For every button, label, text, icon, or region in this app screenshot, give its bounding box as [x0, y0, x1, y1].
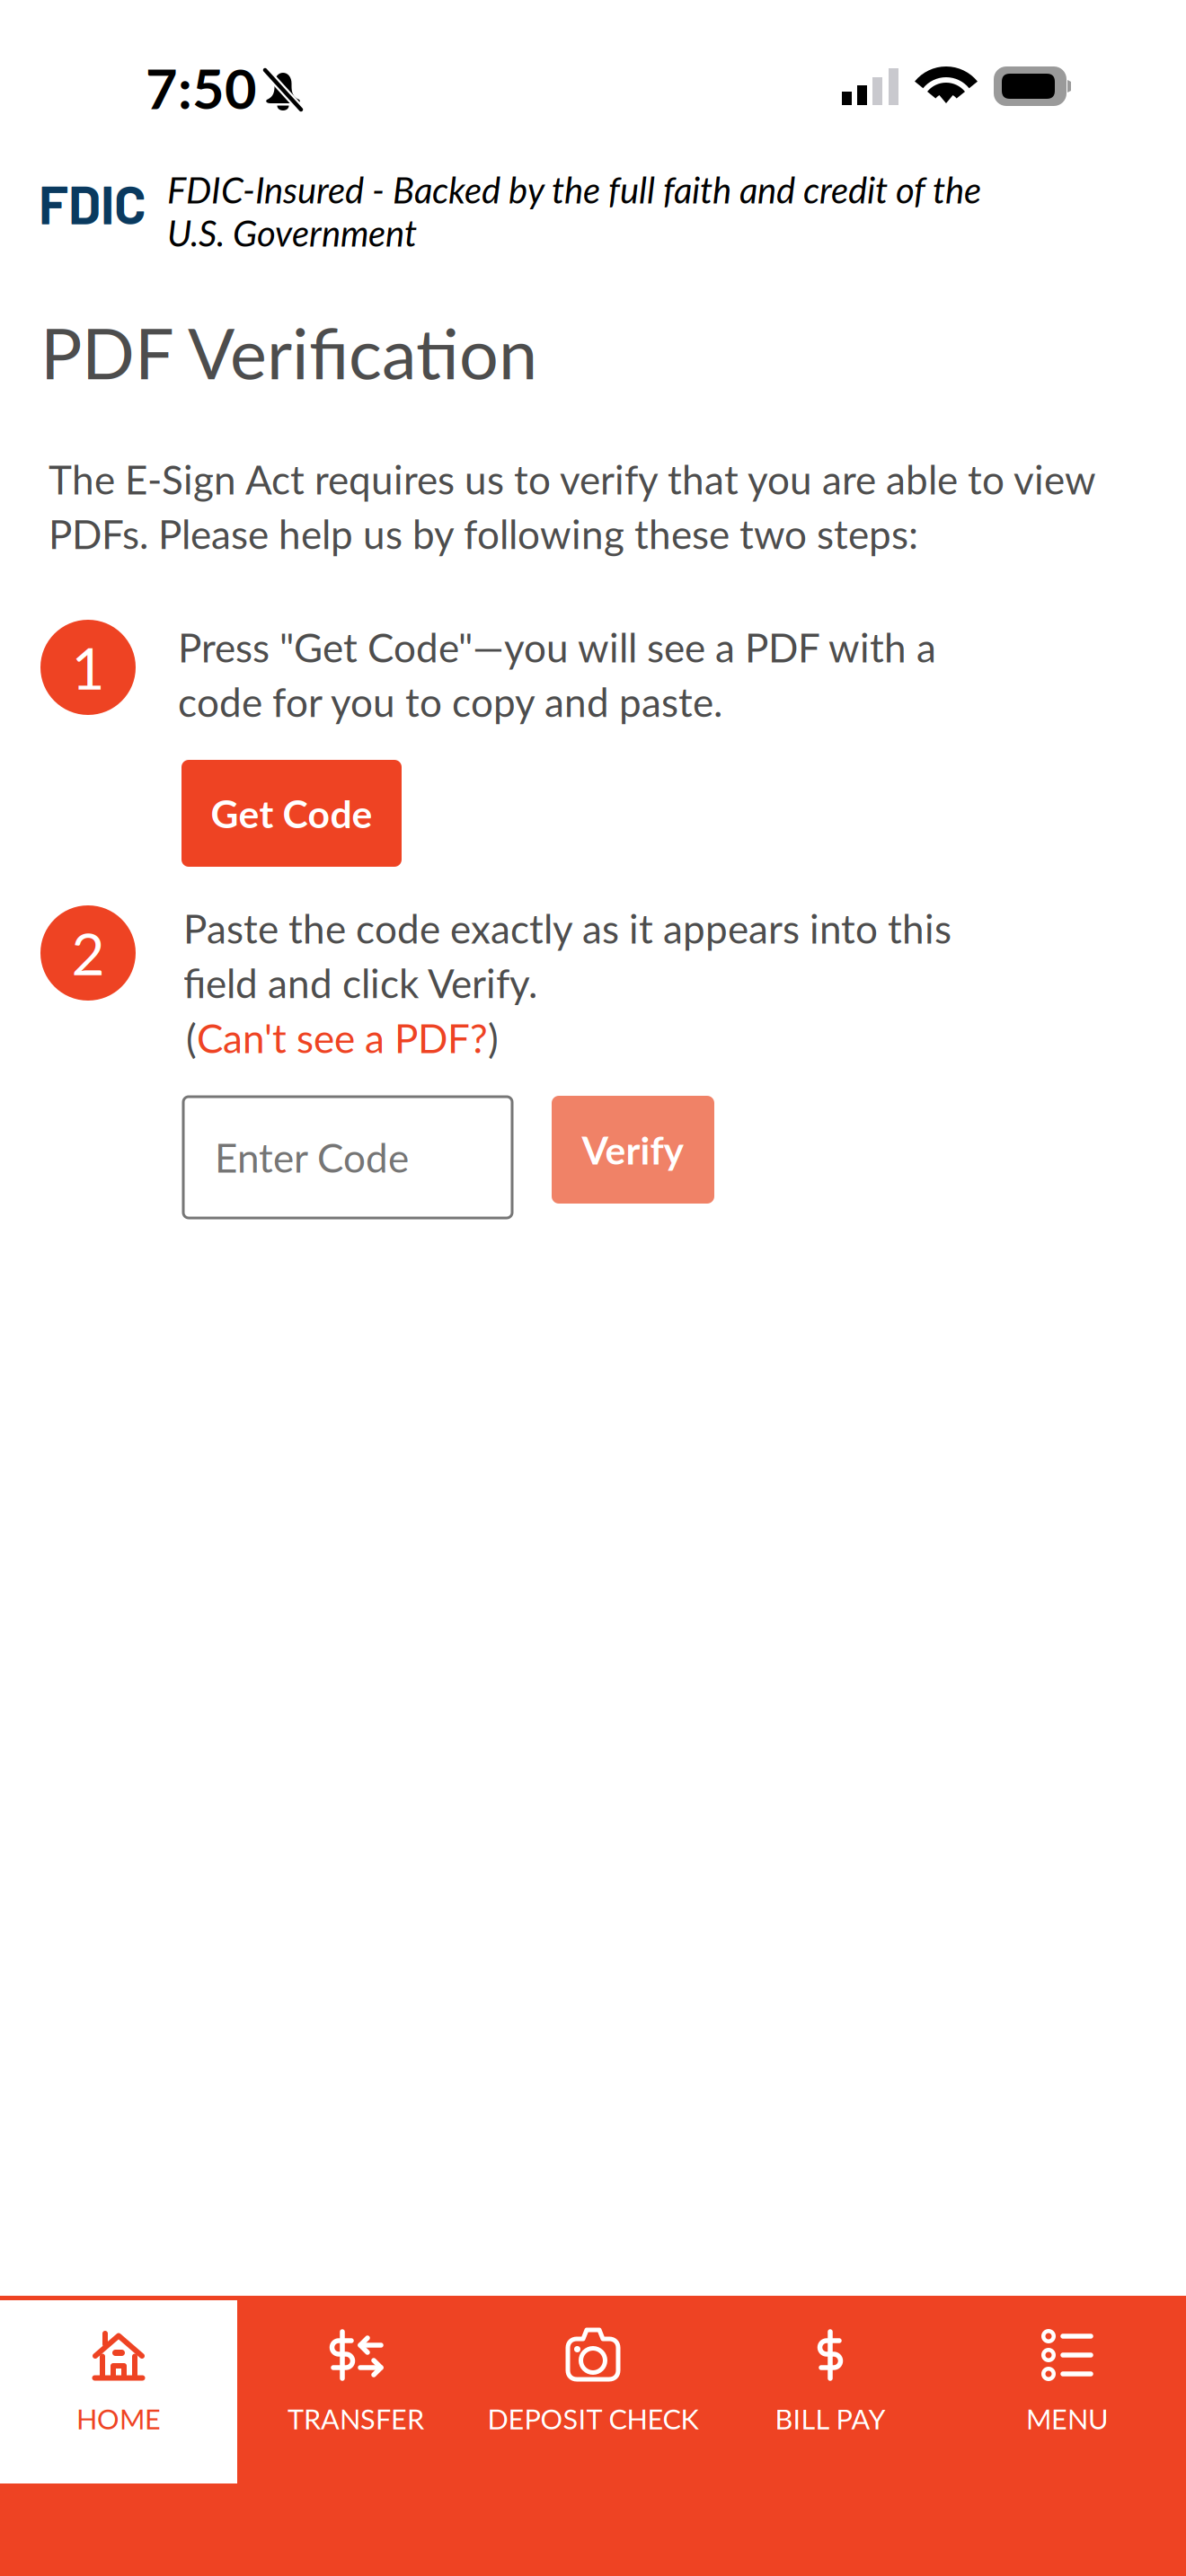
- button[interactable]: Verify: [552, 1096, 714, 1204]
- button[interactable]: TRANSFER: [237, 2300, 474, 2483]
- button[interactable]: Get Code: [181, 760, 402, 867]
- staticText: TRANSFER: [288, 2402, 424, 2435]
- staticText: FDIC-Insured - Backed by the full faith …: [167, 168, 981, 211]
- staticText: BILL PAY: [775, 2402, 885, 2435]
- button[interactable]: DEPOSIT CHECK: [474, 2300, 712, 2483]
- staticText: DEPOSIT CHECK: [487, 2402, 699, 2435]
- staticText: Enter Code: [215, 1134, 409, 1181]
- staticText: FDIC: [39, 172, 146, 235]
- button[interactable]: BILL PAY: [712, 2300, 949, 2483]
- staticText: 2: [71, 918, 105, 987]
- button[interactable]: MENU: [949, 2300, 1186, 2483]
- staticText: (: [186, 1014, 197, 1061]
- staticText: The E-Sign Act requires us to verify tha…: [49, 455, 1095, 557]
- button[interactable]: (: [186, 1014, 499, 1061]
- staticText: Paste the code exactly as it appears int…: [183, 904, 951, 1007]
- staticText: 1: [71, 633, 105, 702]
- staticText: Get Code: [211, 790, 372, 836]
- staticText: Verify: [582, 1127, 684, 1173]
- staticText: ): [488, 1014, 499, 1061]
- staticText: PDF Verification: [40, 311, 537, 394]
- staticText: U.S. Government: [167, 211, 417, 254]
- staticText: MENU: [1026, 2402, 1109, 2435]
- staticText: Can't see a PDF?: [197, 1014, 488, 1061]
- button[interactable]: HOME: [0, 2300, 237, 2483]
- staticText: 7:50: [146, 55, 257, 121]
- staticText: Press "Get Code"—you will see a PDF with…: [178, 623, 936, 725]
- staticText: HOME: [76, 2402, 161, 2435]
